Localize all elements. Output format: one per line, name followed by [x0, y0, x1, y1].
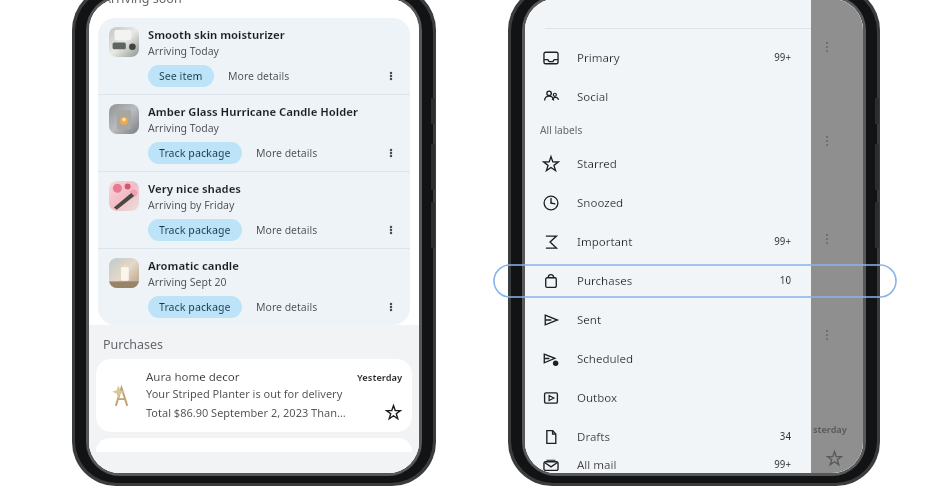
staticText: Amber Glass Hurricane Candle Holder — [148, 104, 358, 119]
button[interactable]: More options — [380, 142, 402, 164]
button[interactable]: More options — [380, 65, 402, 87]
button[interactable]: Star — [383, 402, 403, 422]
button[interactable]: Important — [525, 222, 811, 261]
staticText: Purchases — [577, 273, 779, 289]
button[interactable]: Track package — [148, 296, 242, 318]
staticText: Scheduled — [577, 351, 791, 367]
staticText: See item — [159, 69, 203, 83]
staticText: All mail — [577, 457, 774, 473]
staticText: Aura home decor — [146, 369, 357, 385]
staticText: Your Striped Planter is out for delivery — [146, 386, 343, 401]
staticText: Arriving Today — [148, 44, 219, 58]
staticText: Yesterday — [357, 371, 403, 384]
button[interactable]: Track package — [148, 219, 242, 241]
staticText: Outbox — [577, 390, 791, 406]
button[interactable]: Scheduled — [525, 339, 811, 378]
staticText: More details — [256, 146, 318, 160]
button[interactable]: Aura home decor — [96, 359, 412, 432]
staticText: Sent — [577, 312, 791, 328]
button[interactable]: Sent — [525, 300, 811, 339]
staticText: 99+ — [774, 458, 791, 471]
button[interactable]: Very nice shades — [98, 172, 410, 248]
button[interactable]: More details — [253, 220, 321, 240]
button[interactable]: More details — [253, 143, 321, 163]
button[interactable]: More details — [225, 66, 293, 86]
staticText: Primary — [577, 50, 774, 66]
button[interactable]: More details — [253, 297, 321, 317]
button[interactable]: Smooth skin moisturizer — [98, 18, 410, 94]
staticText: 34 — [779, 430, 791, 443]
staticText: Track package — [159, 146, 231, 160]
button[interactable]: Social — [525, 77, 811, 116]
staticText: Arriving Sept 20 — [148, 275, 227, 289]
staticText: Arriving Today — [148, 121, 219, 135]
button[interactable]: Amber Glass Hurricane Candle Holder — [98, 95, 410, 171]
staticText: Track package — [159, 300, 231, 314]
staticText: Important — [577, 234, 774, 250]
button[interactable]: Primary — [525, 38, 811, 77]
button[interactable]: Aromatic candle — [98, 249, 410, 325]
button[interactable]: Starred — [525, 144, 811, 183]
button[interactable]: Add a status — [525, 0, 811, 13]
button[interactable]: All mail — [525, 456, 811, 473]
button[interactable]: Purchases — [525, 261, 811, 300]
button[interactable]: Track package — [148, 142, 242, 164]
staticText: Smooth skin moisturizer — [148, 27, 285, 42]
button[interactable]: Snoozed — [525, 183, 811, 222]
button[interactable]: Drafts — [525, 417, 811, 456]
staticText: Snoozed — [577, 195, 791, 211]
button[interactable]: More options — [380, 296, 402, 318]
staticText: 99+ — [774, 51, 791, 64]
staticText: Very nice shades — [148, 181, 241, 196]
staticText: Social — [577, 89, 791, 105]
staticText: More details — [256, 223, 318, 237]
staticText: sterday — [813, 423, 847, 435]
staticText: Total $86.90 September 2, 2023 Than… — [146, 405, 383, 420]
button[interactable]: See item — [148, 65, 214, 87]
staticText: 99+ — [774, 235, 791, 248]
staticText: Purchases — [103, 336, 163, 353]
button[interactable]: Outbox — [525, 378, 811, 417]
staticText: 10 — [779, 274, 791, 287]
staticText: All labels — [540, 123, 583, 137]
staticText: Starred — [577, 156, 791, 172]
staticText: More details — [256, 300, 318, 314]
staticText: Aromatic candle — [148, 258, 239, 273]
button[interactable]: More options — [380, 219, 402, 241]
staticText: Arriving by Friday — [148, 198, 235, 212]
staticText: Arriving soon — [103, 0, 182, 7]
staticText: Drafts — [577, 429, 779, 445]
staticText: More details — [228, 69, 290, 83]
staticText: Track package — [159, 223, 231, 237]
